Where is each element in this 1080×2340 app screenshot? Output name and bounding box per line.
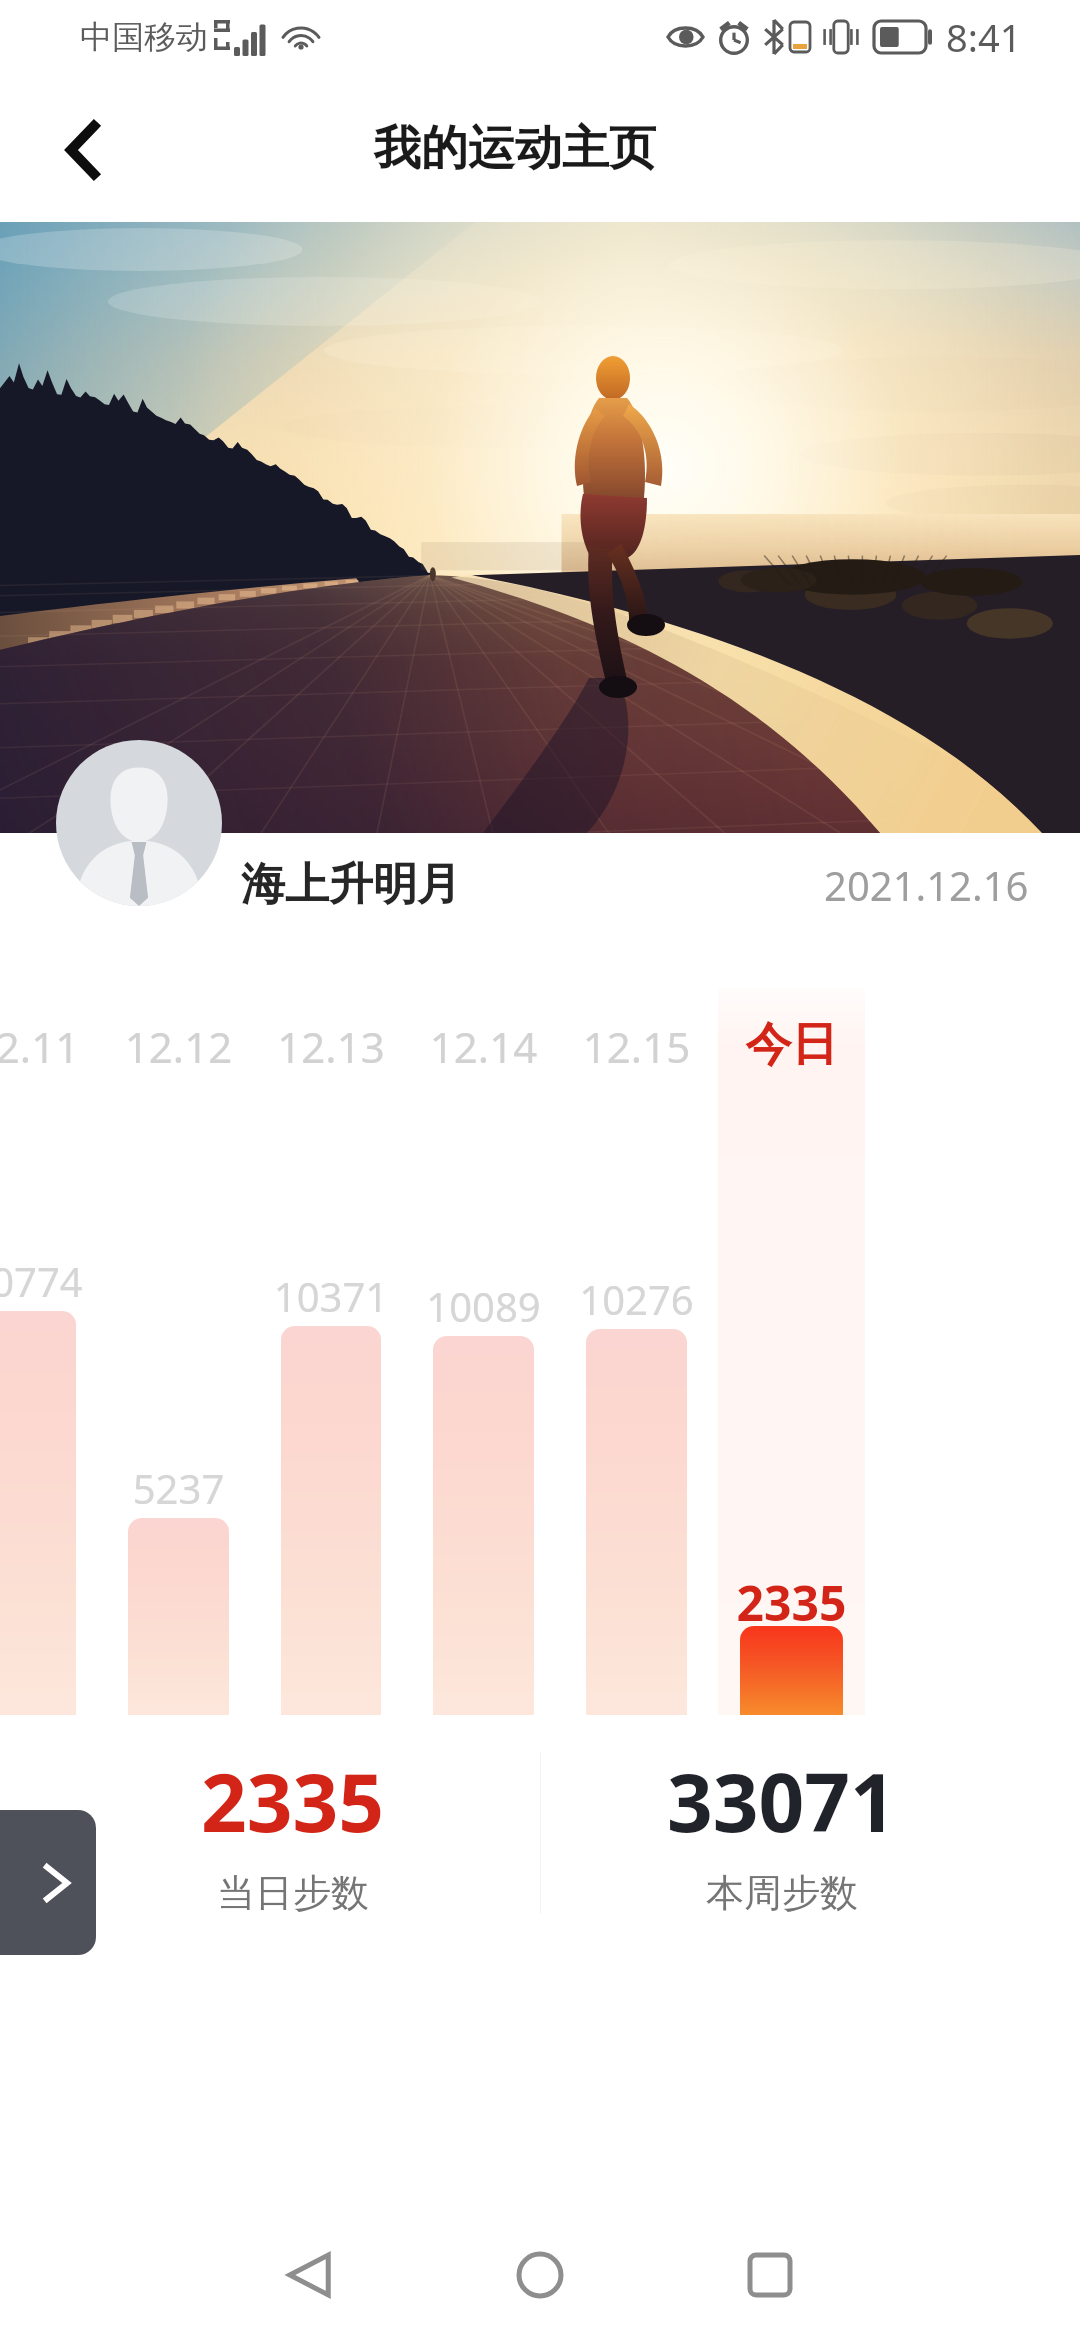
button[interactable]: 12.12 5237 步 [128, 1518, 229, 1715]
staticText: 我的运动主页 [374, 119, 656, 178]
staticText: 本周步数 [706, 1869, 858, 1917]
staticText: 33071 [667, 1746, 896, 1855]
button[interactable]: Recents [725, 2230, 815, 2320]
staticText: 12.12 [103, 1018, 254, 1075]
staticText: 12.14 [408, 1018, 559, 1075]
staticText: 12.11 [0, 1018, 101, 1075]
staticText: 当日步数 [217, 1869, 369, 1917]
staticText: 中国移动 [80, 17, 208, 57]
staticText: 今日 [718, 1016, 865, 1074]
staticText: 10089 [403, 1279, 564, 1333]
staticText: 2021.12.16 [824, 858, 1029, 912]
staticText: 8:41 [946, 11, 1022, 63]
button[interactable]: 12.13 10371 步 [281, 1326, 381, 1715]
button[interactable]: 头像 [56, 740, 222, 906]
staticText: 12.15 [561, 1018, 712, 1075]
staticText: 10276 [556, 1272, 717, 1326]
staticText: 10774 [0, 1254, 106, 1308]
button[interactable]: 12.14 10089 步 [433, 1336, 534, 1715]
button[interactable]: 展开侧栏 [0, 1810, 96, 1955]
button[interactable]: Back [265, 2230, 355, 2320]
button[interactable]: 今日 2335 步 [718, 988, 865, 1715]
button[interactable]: 12.15 10276 步 [586, 1329, 687, 1715]
staticText: 10371 [251, 1269, 411, 1323]
staticText: 5237 [98, 1461, 259, 1515]
staticText: 海上升明月 [241, 857, 461, 912]
staticText: 2335 [201, 1746, 385, 1855]
button[interactable]: 返回 [30, 98, 134, 202]
staticText: 2335 [700, 1570, 883, 1635]
staticText: 12.13 [256, 1018, 406, 1075]
button[interactable]: 12.11 10774 步 [0, 1311, 76, 1715]
button[interactable]: 33071 [508, 1746, 1054, 1936]
button[interactable]: Home [495, 2230, 585, 2320]
button[interactable]: 2335 [20, 1746, 566, 1936]
